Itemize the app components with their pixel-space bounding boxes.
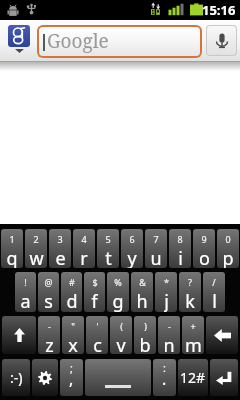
- staticText: s: [44, 289, 53, 312]
- button[interactable]: (: [110, 316, 132, 354]
- button[interactable]: 0: [217, 229, 239, 268]
- staticText: x: [68, 333, 78, 354]
- staticText: j: [164, 289, 169, 312]
- button[interactable]: ?: [179, 272, 201, 312]
- button[interactable]: @: [38, 272, 59, 312]
- staticText: %: [114, 276, 122, 288]
- staticText: /: [212, 276, 216, 288]
- button[interactable]: Backspace: [206, 316, 238, 354]
- staticText: $: [92, 276, 98, 288]
- button[interactable]: Symbols: [178, 359, 208, 396]
- button[interactable]: Emoticons: [2, 359, 30, 396]
- button[interactable]: -: [158, 316, 180, 354]
- staticText: 9: [201, 233, 207, 245]
- staticText: h: [136, 289, 148, 312]
- staticText: :: [163, 360, 166, 375]
- staticText: z: [45, 333, 54, 354]
- staticText: ": [71, 320, 75, 332]
- staticText: *: [164, 276, 169, 288]
- button[interactable]: +: [182, 316, 204, 354]
- button[interactable]: %: [107, 272, 129, 312]
- staticText: 15:16: [202, 1, 236, 19]
- button[interactable]: 2: [25, 229, 47, 268]
- staticText: 4: [81, 233, 87, 245]
- staticText: u: [150, 246, 162, 268]
- staticText: g: [112, 289, 124, 312]
- staticText: 12#: [180, 368, 206, 387]
- staticText: o: [199, 246, 210, 268]
- button[interactable]: $: [84, 272, 105, 312]
- button[interactable]: ): [134, 316, 156, 354]
- staticText: ): [144, 320, 147, 332]
- staticText: 1: [9, 233, 15, 245]
- button[interactable]: ": [62, 316, 84, 354]
- staticText: 8: [177, 233, 183, 245]
- staticText: @: [44, 276, 53, 288]
- button[interactable]: 8: [169, 229, 191, 268]
- staticText: :-): [10, 368, 23, 387]
- staticText: n: [163, 333, 175, 354]
- staticText: v: [116, 333, 126, 354]
- button[interactable]: 6: [121, 229, 143, 268]
- staticText: 2: [33, 233, 39, 245]
- staticText: #: [69, 276, 75, 288]
- staticText: y: [127, 246, 137, 268]
- staticText: -: [48, 320, 51, 332]
- staticText: ?: [188, 276, 192, 288]
- button[interactable]: 3: [49, 229, 71, 268]
- button[interactable]: 5: [97, 229, 119, 268]
- staticText: r: [80, 246, 88, 268]
- staticText: !: [24, 276, 27, 288]
- staticText: ;: [70, 360, 73, 375]
- staticText: m: [185, 333, 202, 354]
- button[interactable]: Space: [85, 359, 151, 396]
- staticText: d: [66, 289, 78, 312]
- staticText: +: [190, 320, 196, 332]
- staticText: 0: [225, 233, 231, 245]
- staticText: w: [29, 246, 44, 268]
- staticText: c: [93, 333, 102, 354]
- staticText: 7: [153, 233, 159, 245]
- staticText: l: [212, 289, 217, 312]
- button[interactable]: Voice search: [207, 26, 236, 55]
- button[interactable]: *: [155, 272, 177, 312]
- staticText: .: [162, 368, 167, 390]
- staticText: ': [96, 320, 99, 332]
- button[interactable]: 7: [145, 229, 167, 268]
- button[interactable]: Settings: [32, 359, 58, 396]
- staticText: q: [6, 246, 18, 268]
- staticText: 5: [105, 233, 111, 245]
- staticText: 3: [57, 233, 63, 245]
- button[interactable]: Google: [39, 27, 200, 56]
- staticText: k: [185, 289, 195, 312]
- button[interactable]: Search provider Google: [8, 20, 30, 61]
- staticText: a: [20, 289, 31, 312]
- button[interactable]: !: [15, 272, 36, 312]
- staticText: 6: [129, 233, 135, 245]
- button[interactable]: 1: [1, 229, 23, 268]
- button[interactable]: 9: [193, 229, 215, 268]
- staticText: b: [139, 333, 151, 354]
- button[interactable]: -: [38, 316, 60, 354]
- staticText: &: [139, 276, 146, 288]
- staticText: i: [178, 246, 183, 268]
- button[interactable]: Enter: [210, 359, 238, 396]
- button[interactable]: Shift: [2, 316, 36, 354]
- staticText: -: [168, 320, 171, 332]
- button[interactable]: ;: [60, 359, 83, 396]
- staticText: (: [120, 320, 123, 332]
- staticText: e: [55, 246, 66, 268]
- button[interactable]: :: [153, 359, 176, 396]
- button[interactable]: /: [203, 272, 225, 312]
- button[interactable]: &: [131, 272, 153, 312]
- staticText: Google: [47, 28, 109, 54]
- button[interactable]: #: [61, 272, 82, 312]
- staticText: p: [222, 246, 234, 268]
- button[interactable]: 4: [73, 229, 95, 268]
- staticText: ,: [69, 368, 74, 390]
- button[interactable]: ': [86, 316, 108, 354]
- staticText: f: [91, 289, 98, 312]
- staticText: t: [105, 246, 112, 268]
